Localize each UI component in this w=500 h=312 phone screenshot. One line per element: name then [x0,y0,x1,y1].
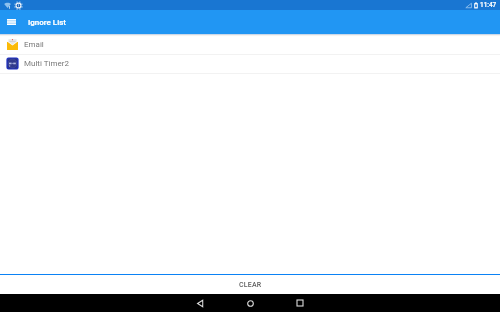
button[interactable]: Recent apps [284,294,316,312]
button[interactable]: Back [184,294,216,312]
staticText: Multi Timer2 [24,59,69,68]
staticText: CLEAR [239,281,262,289]
button[interactable]: CLEAR [0,275,500,294]
staticText: Email [24,40,44,49]
button[interactable]: Open navigation menu [7,10,16,34]
button[interactable]: Multi Timer2 [0,55,500,74]
button[interactable]: Home [234,294,266,312]
button[interactable]: Email [0,36,500,55]
staticText: Ignore List [28,18,66,27]
staticText: 11:47 [480,1,497,9]
